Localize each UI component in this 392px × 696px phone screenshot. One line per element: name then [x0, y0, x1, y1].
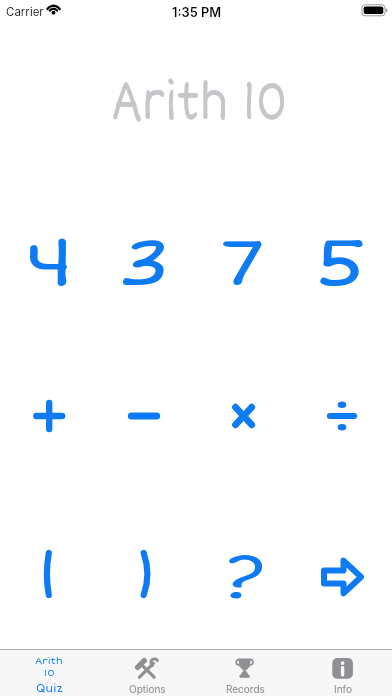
staticText: 7 [219, 222, 267, 305]
button[interactable]: ? [196, 545, 294, 609]
button[interactable]: Arith [0, 650, 98, 696]
button[interactable] [98, 545, 196, 609]
button[interactable] [294, 545, 392, 609]
button[interactable]: Options [98, 650, 196, 696]
staticText: 1:35 PM [172, 5, 221, 20]
staticText: Quiz [36, 681, 63, 695]
staticText: Carrier [6, 5, 44, 19]
button[interactable] [0, 545, 98, 609]
button[interactable] [98, 376, 196, 456]
staticText: Info [334, 683, 352, 695]
button[interactable] [196, 376, 294, 456]
staticText: 3 [117, 222, 173, 305]
staticText: Arith [35, 655, 63, 667]
button[interactable]: 5 [294, 212, 392, 312]
button[interactable] [0, 376, 98, 456]
button[interactable]: 7 [196, 212, 294, 312]
staticText: 10 [44, 667, 55, 679]
staticText: Arith 10 [111, 69, 288, 129]
staticText: ? [220, 545, 267, 609]
button[interactable]: Info [294, 650, 392, 696]
button[interactable]: 3 [98, 212, 196, 312]
staticText: 4 [24, 222, 77, 305]
button[interactable] [294, 376, 392, 456]
staticText: 5 [312, 222, 369, 305]
button[interactable]: 4 [0, 212, 98, 312]
button[interactable]: Records [196, 650, 294, 696]
staticText: Records [226, 683, 265, 695]
staticText: Options [129, 683, 166, 695]
